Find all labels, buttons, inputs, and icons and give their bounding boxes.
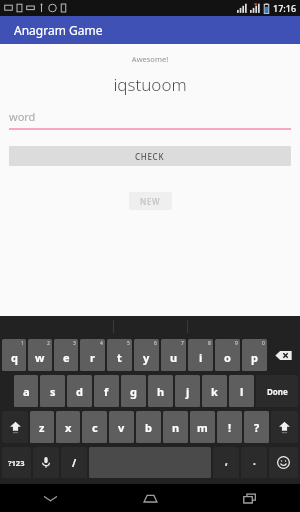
button[interactable]: j xyxy=(175,375,200,407)
button[interactable]: Recents xyxy=(200,484,300,512)
button[interactable]: b xyxy=(136,411,161,443)
staticText: 7 xyxy=(181,340,184,347)
staticText: h xyxy=(157,384,165,399)
button[interactable]: 5 xyxy=(107,339,132,371)
staticText: w xyxy=(35,350,45,365)
button[interactable]: h xyxy=(148,375,173,407)
button[interactable]: / xyxy=(61,447,87,478)
button[interactable]: x xyxy=(56,411,80,443)
staticText: p xyxy=(251,350,258,365)
staticText: Done xyxy=(267,386,288,397)
staticText: 1 xyxy=(21,340,24,347)
button[interactable]: v xyxy=(109,411,134,443)
staticText: k xyxy=(211,384,218,399)
staticText: 8 xyxy=(208,340,211,347)
staticText: o xyxy=(224,350,231,365)
staticText: q xyxy=(11,350,18,365)
staticText: e xyxy=(63,350,70,365)
button[interactable]: ?123 xyxy=(2,447,31,478)
staticText: CHECK xyxy=(135,151,165,162)
staticText: , xyxy=(225,454,228,468)
button[interactable]: g xyxy=(121,375,146,407)
staticText: c xyxy=(92,420,98,435)
staticText: m xyxy=(197,420,208,435)
staticText: ?123 xyxy=(8,458,25,468)
staticText: d xyxy=(76,384,83,399)
staticText: z xyxy=(39,420,45,435)
staticText: a xyxy=(23,384,30,399)
button[interactable]: 9 xyxy=(215,339,240,371)
button[interactable]: n xyxy=(163,411,188,443)
button[interactable]: NEW xyxy=(129,192,172,210)
button[interactable]: , xyxy=(213,447,239,478)
staticText: 5 xyxy=(127,340,130,347)
staticText: y xyxy=(143,350,150,365)
staticText: ! xyxy=(228,420,232,435)
staticText: x xyxy=(65,420,72,435)
staticText: u xyxy=(170,350,178,365)
staticText: v xyxy=(118,420,125,435)
staticText: 17:16 xyxy=(273,2,297,14)
button[interactable]: 0 xyxy=(242,339,267,371)
staticText: Anagram Game xyxy=(14,22,103,38)
button[interactable]: d xyxy=(67,375,92,407)
button[interactable]: ! xyxy=(217,411,242,443)
staticText: 2 xyxy=(47,340,50,347)
button[interactable]: Voice input xyxy=(33,447,59,478)
button[interactable]: l xyxy=(229,375,254,407)
staticText: NEW xyxy=(140,196,161,207)
button[interactable]: c xyxy=(82,411,107,443)
staticText: 6 xyxy=(154,340,157,347)
button[interactable]: Emoji xyxy=(269,447,298,478)
button[interactable]: Backspace xyxy=(269,339,298,371)
staticText: Awesome! xyxy=(0,54,300,64)
button[interactable]: a xyxy=(14,375,38,407)
staticText: n xyxy=(172,420,180,435)
button[interactable]: f xyxy=(94,375,119,407)
staticText: . xyxy=(253,454,256,468)
button[interactable]: Home xyxy=(100,484,200,512)
staticText: 4 xyxy=(100,340,103,347)
button[interactable]: ? xyxy=(244,411,269,443)
staticText: i xyxy=(199,350,203,365)
button[interactable]: 7 xyxy=(161,339,186,371)
staticText: l xyxy=(240,384,244,399)
staticText: word xyxy=(9,109,36,124)
button[interactable]: CHECK xyxy=(9,146,291,166)
button[interactable]: 6 xyxy=(134,339,159,371)
staticText: b xyxy=(145,420,152,435)
button[interactable]: z xyxy=(30,411,54,443)
staticText: 3 xyxy=(73,340,76,347)
button[interactable]: Done xyxy=(256,375,298,407)
staticText: 0 xyxy=(262,340,265,347)
button[interactable]: 3 xyxy=(54,339,78,371)
button[interactable]: s xyxy=(40,375,65,407)
button[interactable]: k xyxy=(202,375,227,407)
button[interactable]: . xyxy=(241,447,267,478)
staticText: r xyxy=(90,350,95,365)
button[interactable]: Shift xyxy=(271,411,298,443)
staticText: f xyxy=(104,384,109,399)
button[interactable]: word xyxy=(9,109,291,130)
staticText: iqstuoom xyxy=(0,73,300,96)
staticText: t xyxy=(117,350,122,365)
staticText: / xyxy=(72,456,77,470)
button[interactable]: Hide keyboard xyxy=(0,484,100,512)
button[interactable]: m xyxy=(190,411,215,443)
button[interactable]: Shift xyxy=(2,411,28,443)
staticText: 9 xyxy=(235,340,238,347)
staticText: s xyxy=(50,384,56,399)
staticText: ? xyxy=(254,420,260,435)
button[interactable]: 1 xyxy=(2,339,26,371)
staticText: g xyxy=(130,384,137,399)
button[interactable]: 4 xyxy=(80,339,105,371)
button[interactable]: 8 xyxy=(188,339,213,371)
staticText: j xyxy=(186,384,190,399)
button[interactable]: 2 xyxy=(28,339,52,371)
